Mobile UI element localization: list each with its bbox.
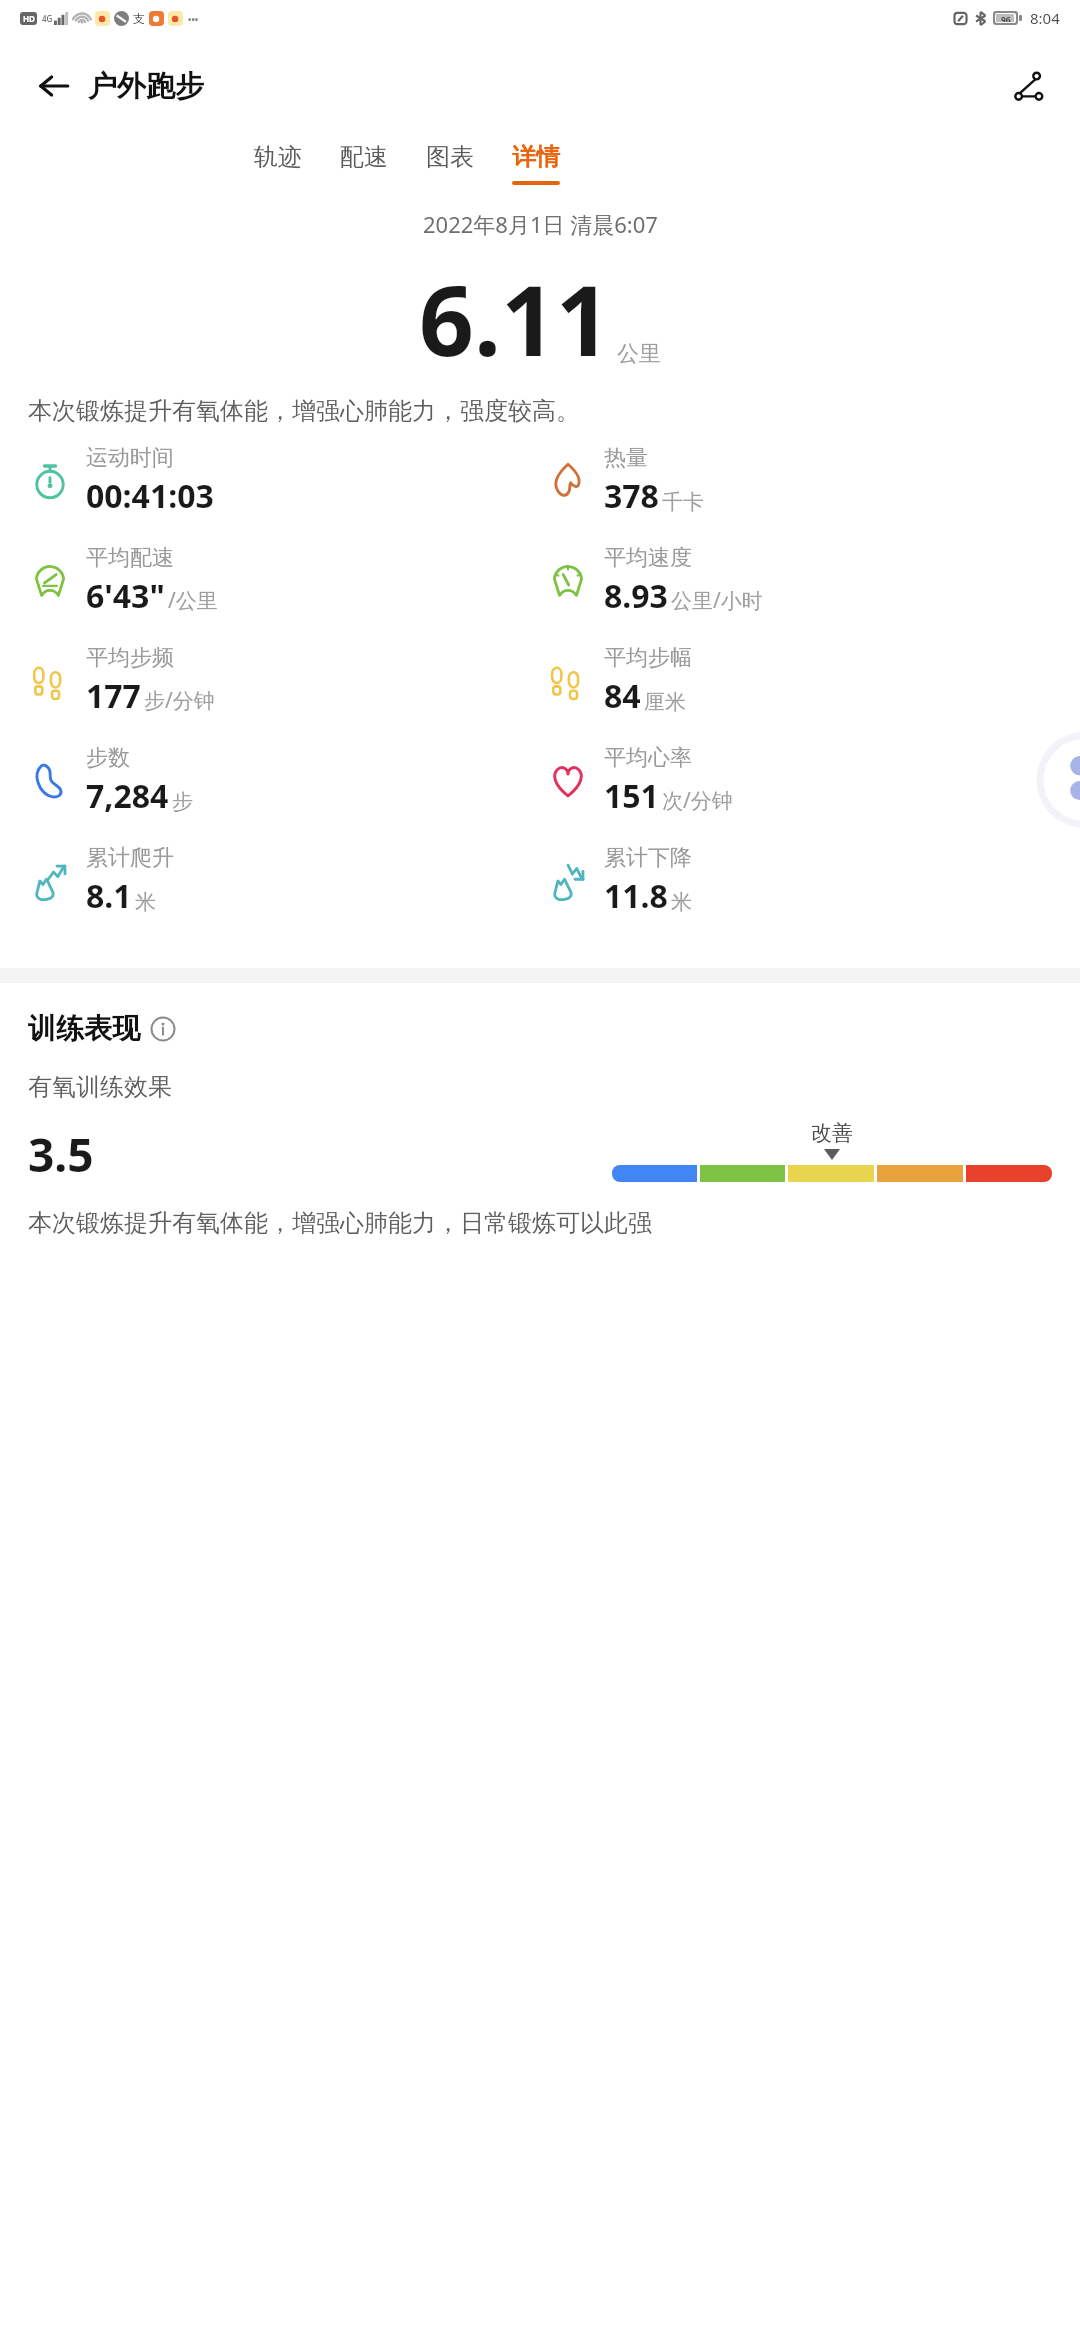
staticText: 配速: [340, 142, 388, 172]
staticText: 改善: [811, 1120, 853, 1146]
button[interactable]: 累计爬升: [22, 840, 540, 922]
staticText: 运动时间: [86, 444, 174, 472]
staticText: 8:04: [1030, 8, 1060, 28]
staticText: 3.5: [28, 1123, 94, 1186]
button[interactable]: Back: [28, 60, 80, 112]
other: Info: [150, 1016, 176, 1042]
button[interactable]: 平均步幅: [540, 640, 1058, 722]
staticText: 千卡: [662, 489, 704, 515]
staticText: 有氧训练效果: [28, 1072, 172, 1102]
button[interactable]: 详情: [508, 136, 564, 191]
staticText: 378: [604, 474, 659, 518]
button[interactable]: 平均心率: [540, 740, 1058, 822]
button[interactable]: 热量: [540, 440, 1058, 522]
staticText: 图表: [426, 142, 474, 172]
button[interactable]: Share: [1002, 60, 1054, 112]
staticText: 次/分钟: [662, 786, 733, 815]
button[interactable]: 配速: [336, 136, 392, 191]
button[interactable]: 轨迹: [250, 136, 306, 191]
staticText: 7,284: [86, 774, 169, 818]
button[interactable]: 运动时间: [22, 440, 540, 522]
staticText: 步: [172, 789, 193, 815]
button[interactable]: Assistive touch: [1050, 734, 1080, 826]
staticText: 177: [86, 674, 141, 718]
staticText: 训练表现: [28, 1011, 140, 1046]
staticText: 平均心率: [604, 744, 692, 772]
staticText: 米: [671, 889, 692, 915]
staticText: 平均步频: [86, 644, 174, 672]
staticText: 详情: [512, 142, 560, 172]
staticText: 本次锻炼提升有氧体能，增强心肺能力，日常锻炼可以此强: [28, 1208, 1052, 1238]
staticText: 00:41:03: [86, 474, 214, 518]
staticText: 支: [133, 11, 145, 26]
staticText: 4G: [42, 13, 53, 24]
staticText: 2022年8月1日 清晨6:07: [423, 209, 658, 239]
button[interactable]: 累计下降: [540, 840, 1058, 922]
staticText: 平均速度: [604, 544, 692, 572]
staticText: 本次锻炼提升有氧体能，增强心肺能力，强度较高。: [28, 396, 1052, 426]
button[interactable]: 图表: [422, 136, 478, 191]
staticText: 6.11: [419, 253, 611, 384]
staticText: •••: [188, 13, 199, 25]
staticText: 96: [1001, 14, 1011, 22]
button[interactable]: 平均配速: [22, 540, 540, 622]
staticText: 6'43": [86, 574, 165, 618]
staticText: 户外跑步: [88, 68, 204, 105]
staticText: HD: [23, 13, 35, 24]
staticText: 热量: [604, 444, 648, 472]
staticText: 公里/小时: [671, 586, 763, 615]
staticText: 累计爬升: [86, 844, 174, 872]
staticText: 米: [135, 889, 156, 915]
button[interactable]: 步数: [22, 740, 540, 822]
staticText: 8.93: [604, 574, 668, 618]
staticText: /公里: [168, 586, 218, 615]
staticText: 151: [604, 774, 659, 818]
staticText: 84: [604, 674, 641, 718]
staticText: 厘米: [644, 689, 686, 715]
staticText: 步数: [86, 744, 130, 772]
button[interactable]: 训练表现: [28, 1009, 176, 1048]
staticText: 8.1: [86, 874, 132, 918]
staticText: 步/分钟: [144, 686, 215, 715]
button[interactable]: 平均步频: [22, 640, 540, 722]
button[interactable]: 平均速度: [540, 540, 1058, 622]
staticText: 累计下降: [604, 844, 692, 872]
staticText: 11.8: [604, 874, 668, 918]
staticText: 平均配速: [86, 544, 174, 572]
staticText: 公里: [617, 340, 661, 368]
staticText: 轨迹: [254, 142, 302, 172]
staticText: 平均步幅: [604, 644, 692, 672]
